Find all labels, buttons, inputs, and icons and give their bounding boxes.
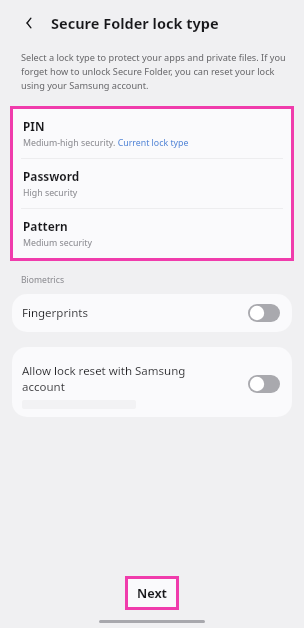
- staticText: Pattern: [23, 218, 68, 234]
- staticText: Medium-high security. Current lock type: [23, 137, 189, 149]
- button[interactable]: PIN: [13, 109, 291, 158]
- staticText: High security: [23, 187, 78, 199]
- button[interactable]: Password: [13, 159, 291, 208]
- button[interactable]: Pattern: [13, 209, 291, 258]
- button[interactable]: Next: [128, 579, 176, 607]
- staticText: PIN: [23, 118, 45, 134]
- staticText: Biometrics: [21, 274, 64, 286]
- staticText: Select a lock type to protect your apps …: [21, 51, 286, 92]
- staticText: Medium security: [23, 237, 92, 249]
- staticText: Password: [23, 168, 80, 184]
- staticText: Secure Folder lock type: [51, 13, 219, 33]
- button[interactable]: Allow lock reset with Samsung account: [12, 347, 292, 417]
- staticText: Allow lock reset with Samsung account: [22, 363, 186, 395]
- button[interactable]: Fingerprints: [12, 294, 292, 332]
- button[interactable]: Back: [16, 10, 42, 36]
- button[interactable]: Toggle off: [248, 304, 280, 322]
- button[interactable]: Toggle off: [248, 375, 280, 393]
- staticText: Next: [137, 585, 168, 602]
- staticText: Fingerprints: [22, 305, 88, 321]
